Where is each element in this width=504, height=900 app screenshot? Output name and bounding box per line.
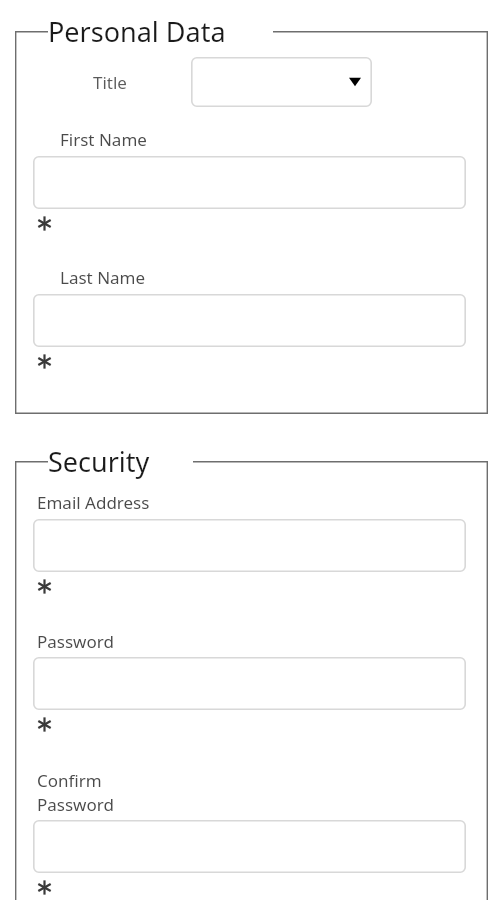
button[interactable]: Title dropdown	[191, 57, 372, 107]
staticText: Personal Data	[48, 13, 226, 50]
staticText: Title	[93, 71, 127, 94]
staticText: First Name	[60, 128, 147, 151]
button[interactable]	[33, 657, 466, 710]
button[interactable]	[33, 519, 466, 572]
staticText: Email Address	[37, 491, 150, 514]
staticText: Confirm	[37, 769, 102, 792]
staticText: Password	[37, 793, 114, 816]
staticText: Password	[37, 630, 114, 653]
button[interactable]	[33, 820, 466, 873]
staticText: Last Name	[60, 266, 146, 289]
other: Security	[15, 461, 488, 900]
button[interactable]	[33, 156, 466, 209]
other: Personal Data	[15, 31, 488, 414]
button[interactable]	[33, 294, 466, 347]
staticText: Security	[48, 443, 150, 480]
